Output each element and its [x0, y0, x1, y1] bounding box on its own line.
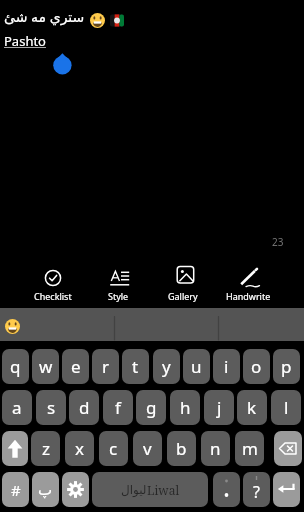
staticText: a	[12, 396, 22, 419]
staticText: k	[247, 396, 257, 419]
staticText: Style	[108, 290, 129, 302]
staticText: n	[210, 437, 221, 460]
button[interactable]: Handwrite	[215, 258, 281, 308]
staticText: p	[281, 355, 292, 378]
button[interactable]: c	[99, 431, 128, 466]
staticText: m	[242, 437, 258, 460]
button[interactable]: s	[36, 390, 66, 425]
staticText: d	[79, 396, 90, 419]
staticText: ?	[253, 481, 260, 503]
staticText: g	[146, 396, 157, 419]
staticText: Pashto	[4, 32, 46, 50]
staticText: r	[102, 355, 110, 378]
staticText: j	[217, 396, 222, 419]
staticText: y	[162, 355, 171, 378]
staticText: Checklist	[34, 290, 72, 302]
button[interactable]: e	[62, 349, 89, 384]
button[interactable]: پ	[32, 472, 59, 507]
button[interactable]	[274, 431, 302, 466]
button[interactable]	[5, 319, 20, 334]
button[interactable]: Gallery	[150, 258, 216, 308]
staticText: o	[251, 355, 262, 378]
button[interactable]: g	[136, 390, 166, 425]
button[interactable]	[273, 472, 300, 507]
button[interactable]	[213, 472, 240, 507]
staticText: Handwrite	[226, 290, 271, 302]
staticText: h	[180, 396, 191, 419]
button[interactable]: r	[92, 349, 119, 384]
button[interactable]: p	[273, 349, 300, 384]
staticText: پ	[38, 481, 53, 498]
button[interactable]: x	[65, 431, 94, 466]
staticText: Gallery	[168, 290, 198, 302]
button[interactable]: m	[235, 431, 264, 466]
staticText: u	[191, 355, 202, 378]
button[interactable]: b	[167, 431, 196, 466]
staticText: x	[75, 437, 84, 460]
button[interactable]: v	[133, 431, 162, 466]
staticText: q	[10, 355, 21, 378]
button[interactable]: q	[2, 349, 29, 384]
staticText: b	[176, 437, 187, 460]
button[interactable]: a	[2, 390, 32, 425]
button[interactable]: ليوال	[92, 472, 208, 507]
staticText: Liwal	[147, 482, 180, 498]
button[interactable]: #	[2, 472, 29, 507]
button[interactable]: l	[271, 390, 301, 425]
button[interactable]: w	[32, 349, 59, 384]
button[interactable]: t	[122, 349, 149, 384]
staticText: z	[42, 437, 50, 460]
button[interactable]	[62, 472, 89, 507]
staticText: l	[284, 396, 289, 419]
staticText: ستري مه شئ	[4, 7, 85, 26]
button[interactable]: u	[183, 349, 210, 384]
staticText: i	[224, 355, 229, 378]
staticText: s	[47, 396, 56, 419]
button[interactable]: Style	[85, 258, 151, 308]
button[interactable]: f	[103, 390, 133, 425]
staticText: c	[109, 437, 118, 460]
button[interactable]: j	[204, 390, 234, 425]
staticText: e	[71, 355, 81, 378]
staticText: v	[143, 437, 152, 460]
button[interactable]	[2, 431, 28, 466]
button[interactable]: n	[201, 431, 230, 466]
button[interactable]: ?	[243, 472, 270, 507]
staticText: t	[132, 355, 139, 378]
button[interactable]: Checklist	[20, 258, 86, 308]
button[interactable]: o	[243, 349, 270, 384]
button[interactable]: k	[237, 390, 267, 425]
button[interactable]: y	[153, 349, 180, 384]
button[interactable]: h	[170, 390, 200, 425]
button[interactable]: d	[69, 390, 99, 425]
staticText: w	[39, 355, 53, 378]
staticText: 23	[272, 235, 284, 249]
button[interactable]: z	[31, 431, 60, 466]
staticText: f	[115, 396, 121, 419]
staticText: #	[11, 480, 21, 500]
staticText: ليوال	[121, 483, 147, 497]
button[interactable]: i	[213, 349, 240, 384]
